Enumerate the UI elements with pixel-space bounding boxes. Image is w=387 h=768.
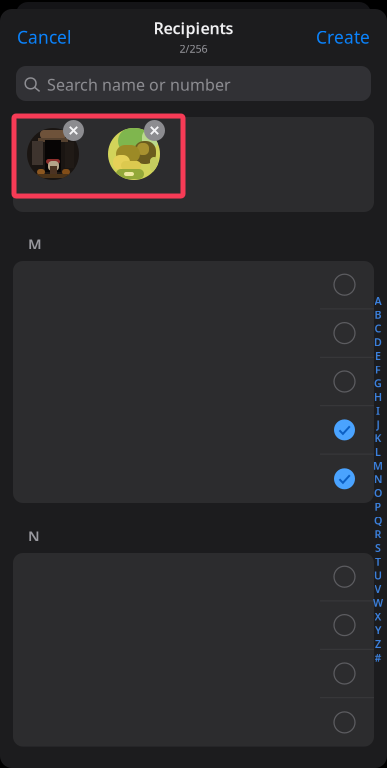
staticText: P	[374, 500, 381, 514]
button[interactable]: Create	[308, 5, 387, 61]
button[interactable]: Remove recipient	[108, 117, 165, 187]
staticText: S	[375, 541, 381, 555]
staticText: R	[374, 527, 381, 541]
button[interactable]	[13, 261, 374, 309]
staticText: Search name or number	[47, 74, 231, 95]
staticText: X	[374, 609, 381, 623]
staticText: Create	[316, 25, 370, 48]
staticText: F	[375, 362, 381, 377]
staticText: C	[374, 321, 381, 335]
staticText: Q	[374, 513, 382, 527]
button[interactable]	[13, 601, 374, 650]
button[interactable]: Remove recipient	[27, 117, 84, 187]
staticText: N	[28, 526, 40, 545]
staticText: W	[373, 596, 383, 610]
button[interactable]	[13, 553, 374, 601]
staticText: U	[374, 568, 382, 582]
button[interactable]	[13, 455, 374, 503]
staticText: J	[376, 417, 379, 431]
button[interactable]	[13, 698, 374, 747]
button[interactable]: Search name or number	[16, 66, 371, 101]
staticText: L	[375, 445, 381, 459]
staticText: B	[374, 307, 381, 322]
staticText: Recipients	[153, 17, 233, 38]
staticText: E	[375, 349, 381, 363]
staticText: A	[374, 294, 381, 308]
staticText: I	[376, 403, 380, 418]
staticText: T	[375, 554, 381, 569]
staticText: V	[374, 582, 381, 596]
staticText: M	[28, 234, 42, 253]
staticText: H	[374, 390, 382, 404]
staticText: Z	[375, 637, 381, 651]
button[interactable]	[13, 406, 374, 455]
staticText: D	[374, 335, 382, 349]
staticText: Cancel	[17, 25, 71, 48]
staticText: N	[374, 472, 382, 486]
staticText: O	[374, 486, 382, 500]
staticText: M	[373, 458, 383, 473]
staticText: Y	[375, 623, 381, 637]
staticText: 2/256	[179, 41, 207, 56]
staticText: G	[374, 376, 382, 390]
button[interactable]: Cancel	[0, 5, 79, 61]
staticText: #	[374, 650, 381, 665]
staticText: K	[374, 431, 381, 445]
